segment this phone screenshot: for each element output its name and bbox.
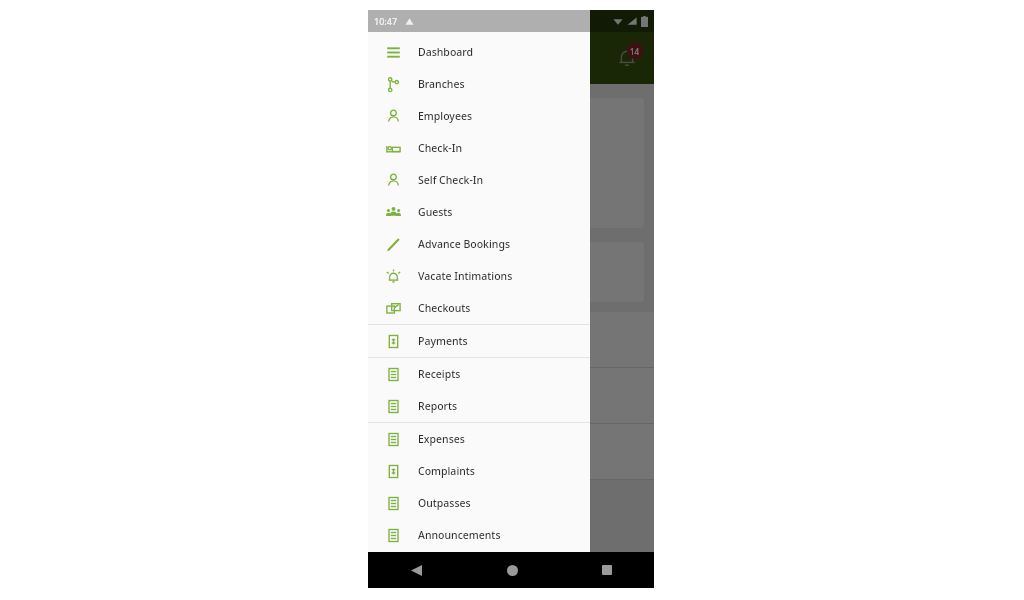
button[interactable]: 0 <box>368 368 654 424</box>
button[interactable]: Outpasses <box>368 487 590 519</box>
button[interactable]: Reports <box>368 390 590 422</box>
staticText: 10:47 <box>374 15 398 27</box>
staticText: Outpasses <box>418 496 471 510</box>
button[interactable]: Recents <box>594 557 620 583</box>
button[interactable]: Notifications <box>610 41 644 75</box>
button[interactable]: Employees <box>368 100 590 132</box>
button[interactable]: Back <box>403 557 429 583</box>
button[interactable]: Advance Bookings <box>368 228 590 260</box>
button[interactable]: Dashboard <box>368 36 590 68</box>
staticText: Dashboard <box>418 45 474 59</box>
staticText: Reports <box>418 399 458 413</box>
staticText: Receipts <box>418 367 461 381</box>
staticText: Checkouts <box>418 301 471 315</box>
staticText: Employees <box>418 109 473 123</box>
button[interactable]: Expenses <box>368 423 590 455</box>
button[interactable]: Self Check-In <box>368 164 590 196</box>
staticText: Occupied 120 (60.0%) <box>388 148 492 162</box>
button[interactable]: 0 <box>368 312 654 368</box>
button[interactable]: Vacate Intimations <box>368 260 590 292</box>
staticText: Guests <box>418 205 453 219</box>
staticText: 10:47 <box>374 15 398 27</box>
staticText: Payments <box>418 334 468 348</box>
staticText: Complaints <box>418 464 475 478</box>
button[interactable]: Receipts <box>368 358 590 390</box>
staticText: Vacate Intimations <box>418 269 513 283</box>
staticText: 14 <box>630 46 640 57</box>
staticText: Check-In <box>418 141 462 155</box>
staticText: Expenses <box>418 432 465 446</box>
staticText: 0 <box>507 322 515 340</box>
button[interactable]: Payments <box>368 325 590 357</box>
button[interactable]: Checkouts <box>368 292 590 324</box>
button[interactable]: 5 <box>368 424 654 480</box>
button[interactable]: Guests <box>368 196 590 228</box>
button[interactable]: Announcements <box>368 519 590 551</box>
staticText: Advance Bookings <box>418 237 511 251</box>
button[interactable]: Home <box>499 557 525 583</box>
staticText: Branches <box>418 77 465 91</box>
button[interactable]: Check-In <box>368 132 590 164</box>
button[interactable]: Branches <box>368 68 590 100</box>
button[interactable]: Expand <box>574 47 596 69</box>
staticText: Self Check-In <box>418 173 484 187</box>
staticText: Vacant 80 (40.0%) <box>388 170 473 184</box>
button[interactable]: Complaints <box>368 455 590 487</box>
staticText: Announcements <box>418 528 501 542</box>
